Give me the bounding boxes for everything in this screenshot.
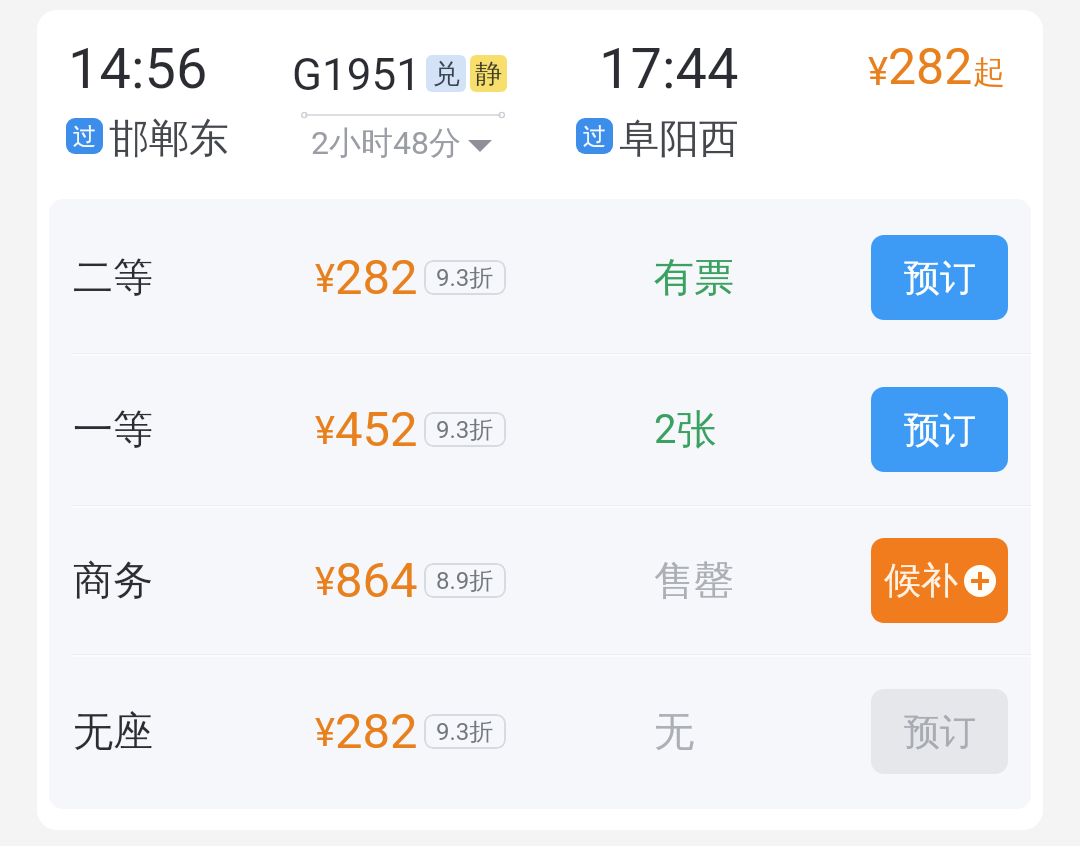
staticText: 静 — [475, 57, 502, 91]
staticText: 邯郸东 — [109, 113, 229, 163]
staticText: 预订 — [904, 407, 976, 452]
button[interactable]: Show schedule details — [462, 128, 498, 164]
button[interactable]: 商务 — [49, 504, 1031, 656]
staticText: 2张 — [654, 404, 717, 454]
staticText: 9.3折 — [436, 263, 494, 293]
staticText: 282 — [888, 38, 973, 97]
staticText: 17:44 — [599, 36, 739, 102]
staticText: ¥ — [315, 711, 335, 756]
staticText: 有票 — [654, 252, 734, 302]
staticText: 一等 — [73, 404, 153, 454]
staticText: 452 — [335, 401, 418, 458]
staticText: 预订 — [904, 709, 976, 754]
staticText: 候补 — [884, 557, 958, 604]
button[interactable]: 预订 — [871, 235, 1008, 320]
staticText: 起 — [973, 52, 1005, 92]
staticText: 商务 — [73, 555, 153, 605]
staticText: 售罄 — [654, 555, 734, 605]
button[interactable]: 预订 — [871, 387, 1008, 472]
staticText: 无 — [654, 706, 694, 756]
staticText: 282 — [335, 703, 418, 760]
button[interactable]: 二等 — [49, 201, 1031, 353]
staticText: 无座 — [73, 706, 153, 756]
staticText: 14:56 — [68, 36, 208, 102]
staticText: G1951 — [292, 49, 421, 101]
button[interactable]: 无座 — [49, 655, 1031, 807]
staticText: 8.9折 — [436, 566, 494, 596]
staticText: 2小时48分 — [311, 123, 461, 163]
staticText: 兑 — [433, 57, 460, 91]
staticText: ¥ — [315, 560, 335, 605]
button[interactable]: 一等 — [49, 353, 1031, 505]
staticText: 阜阳西 — [619, 113, 739, 163]
staticText: 过 — [583, 122, 606, 151]
staticText: ¥ — [315, 257, 335, 302]
staticText: 282 — [335, 249, 418, 306]
staticText: ¥ — [868, 50, 888, 95]
staticText: 9.3折 — [436, 717, 494, 747]
other: Join wait list — [964, 565, 996, 597]
staticText: 二等 — [73, 252, 153, 302]
staticText: 过 — [73, 122, 96, 151]
button[interactable]: 预订 — [871, 689, 1008, 774]
staticText: 9.3折 — [436, 415, 494, 445]
button[interactable]: 候补 — [871, 538, 1008, 623]
staticText: 864 — [335, 552, 418, 609]
button[interactable]: 14:56 — [37, 10, 1043, 199]
staticText: 预订 — [904, 255, 976, 300]
staticText: ¥ — [315, 409, 335, 454]
